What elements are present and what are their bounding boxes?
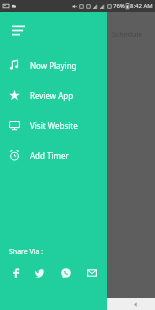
button[interactable]: Now Playing	[0, 50, 107, 80]
staticText: Add Timer	[30, 150, 69, 161]
staticText: Now Playing	[30, 60, 77, 71]
button[interactable]: Share on Twitter	[34, 266, 46, 280]
button[interactable]: Share via Email	[86, 266, 98, 280]
button[interactable]: Add Timer	[0, 140, 107, 170]
staticText: Visit Website	[30, 120, 78, 131]
button[interactable]: Share on WhatsApp	[60, 266, 72, 280]
staticText: 76%	[113, 2, 125, 10]
button[interactable]: Open navigation menu	[6, 18, 30, 42]
button[interactable]: Review App	[0, 80, 107, 110]
staticText: Review App	[30, 90, 74, 101]
staticText: 8:42 AM	[130, 2, 153, 10]
staticText: Schedule	[112, 30, 143, 40]
button[interactable]: Share on Facebook	[9, 266, 20, 280]
button[interactable]: Visit Website	[0, 110, 107, 140]
staticText: Share Via :	[9, 247, 44, 257]
